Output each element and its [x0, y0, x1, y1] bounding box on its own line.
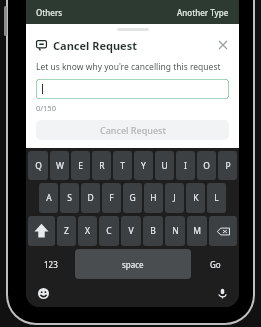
- staticText: G: [129, 192, 136, 204]
- button[interactable]: D: [81, 183, 100, 213]
- button[interactable]: R: [92, 151, 111, 180]
- staticText: Go: [210, 259, 221, 270]
- staticText: Y: [141, 160, 146, 172]
- button[interactable]: space: [75, 249, 191, 279]
- staticText: E: [78, 160, 83, 172]
- button[interactable]: T: [113, 151, 132, 180]
- staticText: V: [128, 225, 134, 237]
- staticText: Let us know why you're cancelling this r…: [36, 61, 221, 73]
- button[interactable]: Z: [57, 216, 76, 246]
- button[interactable]: M: [187, 216, 207, 246]
- staticText: W: [56, 160, 64, 172]
- button[interactable]: Cancel Request: [36, 120, 229, 140]
- button[interactable]: U: [155, 151, 174, 180]
- staticText: P: [225, 160, 231, 172]
- staticText: Others: [36, 7, 63, 18]
- button[interactable]: Close: [215, 37, 231, 53]
- button[interactable]: Emoji: [34, 284, 52, 302]
- button[interactable]: P: [218, 151, 237, 180]
- staticText: 123: [44, 259, 58, 270]
- staticText: U: [161, 160, 168, 172]
- button[interactable]: Go: [193, 249, 237, 279]
- staticText: K: [193, 192, 199, 204]
- button[interactable]: O: [197, 151, 216, 180]
- button[interactable]: H: [144, 183, 163, 213]
- staticText: X: [85, 225, 90, 237]
- staticText: J: [173, 192, 176, 204]
- button[interactable]: F: [102, 183, 121, 213]
- button[interactable]: X: [78, 216, 97, 246]
- button[interactable]: Voice input: [213, 284, 231, 302]
- button[interactable]: I: [176, 151, 195, 180]
- button[interactable]: Y: [134, 151, 153, 180]
- button[interactable]: E: [71, 151, 90, 180]
- button[interactable]: 123: [28, 249, 73, 279]
- button[interactable]: Q: [28, 151, 48, 180]
- button[interactable]: L: [207, 183, 226, 213]
- staticText: R: [99, 160, 105, 172]
- button[interactable]: V: [121, 216, 141, 246]
- staticText: Q: [35, 160, 42, 172]
- staticText: A: [46, 192, 52, 204]
- button[interactable]: B: [143, 216, 163, 246]
- staticText: L: [214, 192, 219, 204]
- staticText: N: [172, 225, 179, 237]
- staticText: D: [87, 192, 94, 204]
- staticText: 0/150: [36, 103, 56, 113]
- staticText: Z: [64, 225, 69, 237]
- staticText: F: [109, 192, 114, 204]
- staticText: S: [67, 192, 72, 204]
- button[interactable]: [36, 79, 229, 99]
- staticText: B: [150, 225, 156, 237]
- button[interactable]: J: [165, 183, 184, 213]
- staticText: I: [184, 160, 187, 172]
- staticText: Cancel Request: [53, 38, 137, 53]
- button[interactable]: A: [39, 183, 58, 213]
- staticText: M: [193, 225, 201, 237]
- button[interactable]: S: [60, 183, 79, 213]
- staticText: H: [150, 192, 157, 204]
- button[interactable]: K: [186, 183, 205, 213]
- button[interactable]: N: [165, 216, 185, 246]
- staticText: C: [106, 225, 112, 237]
- staticText: Cancel Request: [100, 124, 166, 136]
- button[interactable]: W: [50, 151, 69, 180]
- button[interactable]: G: [123, 183, 142, 213]
- staticText: space: [122, 259, 144, 270]
- button[interactable]: Shift: [28, 216, 55, 246]
- button[interactable]: Backspace: [209, 216, 237, 246]
- staticText: T: [120, 160, 125, 172]
- staticText: Another Type: [177, 7, 229, 18]
- button[interactable]: C: [99, 216, 119, 246]
- staticText: O: [203, 160, 210, 172]
